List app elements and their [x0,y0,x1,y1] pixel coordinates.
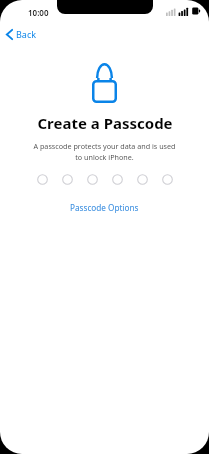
button[interactable]: Back [3,26,40,42]
button[interactable]: Passcode Options [62,199,147,216]
staticText: A passcode protects your data and is use… [33,141,176,162]
staticText: Back [16,28,37,40]
staticText: Create a Passcode [37,113,173,133]
staticText: 10:00 [28,7,49,18]
staticText: Passcode Options [70,202,139,213]
